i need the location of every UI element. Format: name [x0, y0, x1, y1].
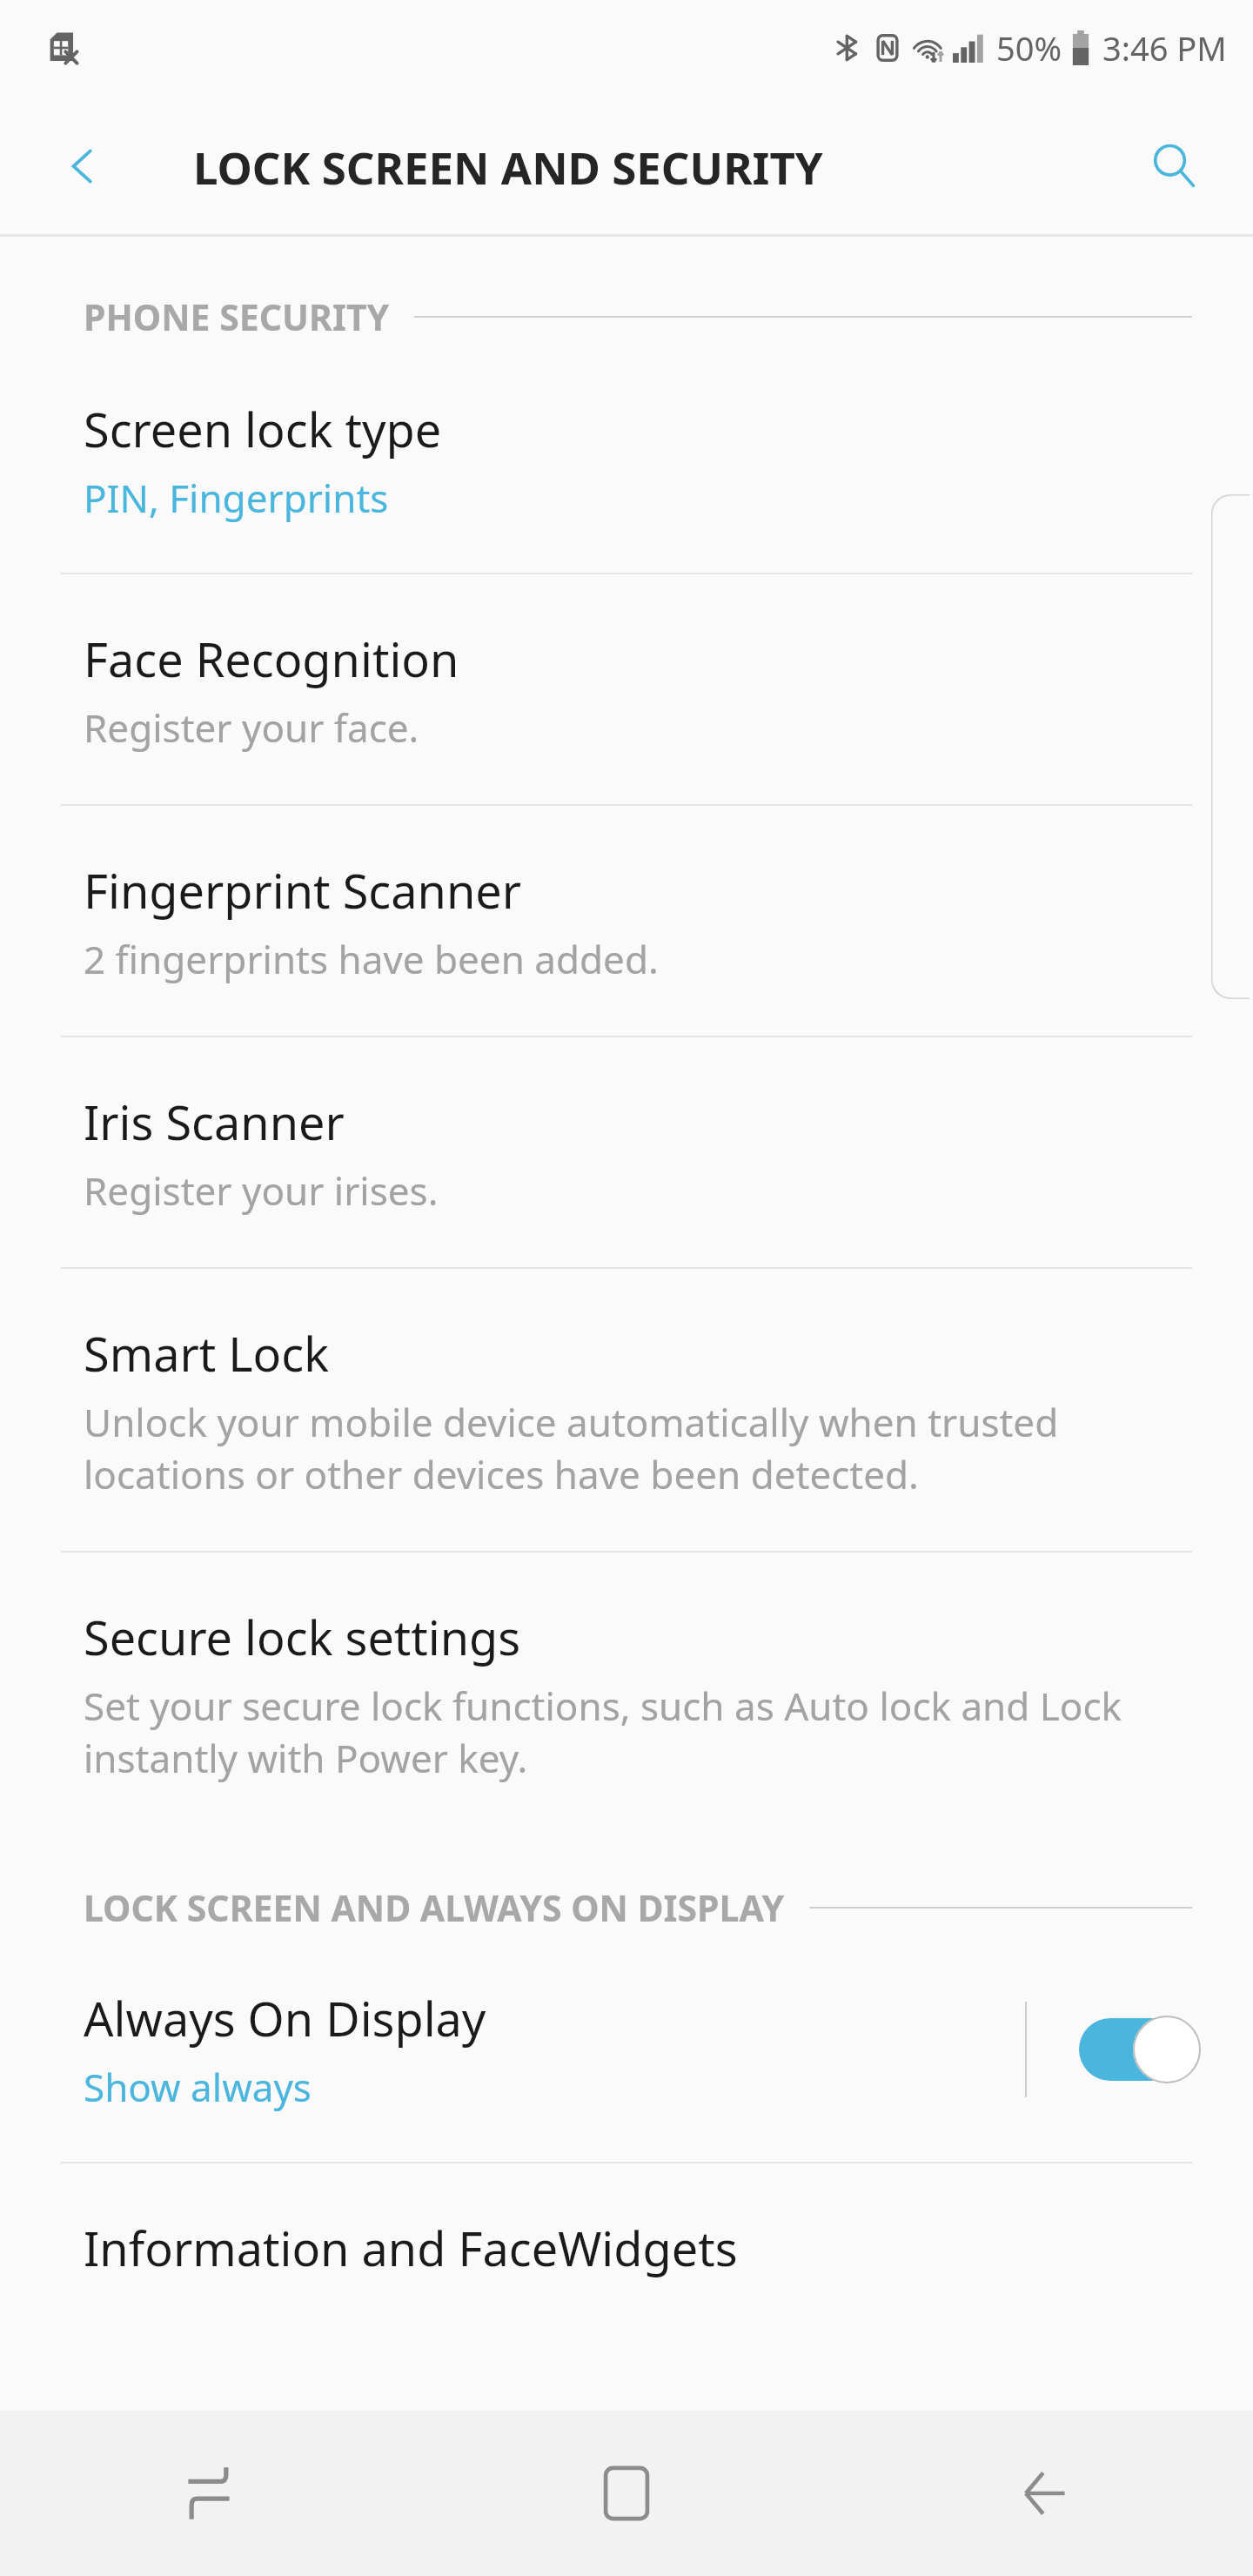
button[interactable]: Face Recognition [0, 574, 1253, 804]
staticText: Smart Lock [84, 1321, 329, 1385]
staticText: Information and FaceWidgets [84, 2216, 738, 2280]
staticText: LOCK SCREEN AND ALWAYS ON DISPLAY [84, 1883, 785, 1932]
button[interactable]: Smart Lock [0, 1269, 1253, 1551]
button[interactable]: Recents [0, 2411, 418, 2576]
staticText: PHONE SECURITY [84, 292, 390, 341]
staticText: LOCK SCREEN AND SECURITY [193, 137, 823, 197]
button[interactable]: Secure lock settings [0, 1553, 1253, 1835]
staticText: Register your face. [84, 701, 419, 754]
staticText: Iris Scanner [84, 1090, 345, 1154]
staticText: Show always [84, 2061, 312, 2113]
staticText: Always On Display [84, 1986, 486, 2050]
staticText: 3:46 PM [1102, 25, 1227, 70]
button[interactable]: Search [1140, 132, 1208, 200]
staticText: PIN, Fingerprints [84, 472, 389, 524]
button[interactable]: Iris Scanner [0, 1037, 1253, 1267]
staticText: 50% [996, 25, 1062, 70]
button[interactable]: Back [52, 136, 113, 197]
button[interactable]: Back [835, 2411, 1253, 2576]
staticText: Set your secure lock functions, such as … [84, 1680, 1201, 1784]
staticText: Fingerprint Scanner [84, 858, 522, 922]
staticText: Face Recognition [84, 627, 459, 691]
button[interactable]: Screen lock type [0, 341, 1253, 573]
staticText: Screen lock type [84, 397, 442, 461]
staticText: Unlock your mobile device automatically … [84, 1396, 1201, 1500]
staticText: Secure lock settings [84, 1605, 521, 1669]
button[interactable]: Always On Display [0, 1932, 1253, 2162]
button[interactable]: Fingerprint Scanner [0, 806, 1253, 1036]
button[interactable]: Information and FaceWidgets [0, 2163, 1253, 2331]
staticText: 2 fingerprints have been added. [84, 933, 659, 985]
button[interactable]: Home [418, 2411, 835, 2576]
button[interactable]: Always On Display toggle [1079, 2016, 1201, 2083]
staticText: Register your irises. [84, 1164, 439, 1217]
